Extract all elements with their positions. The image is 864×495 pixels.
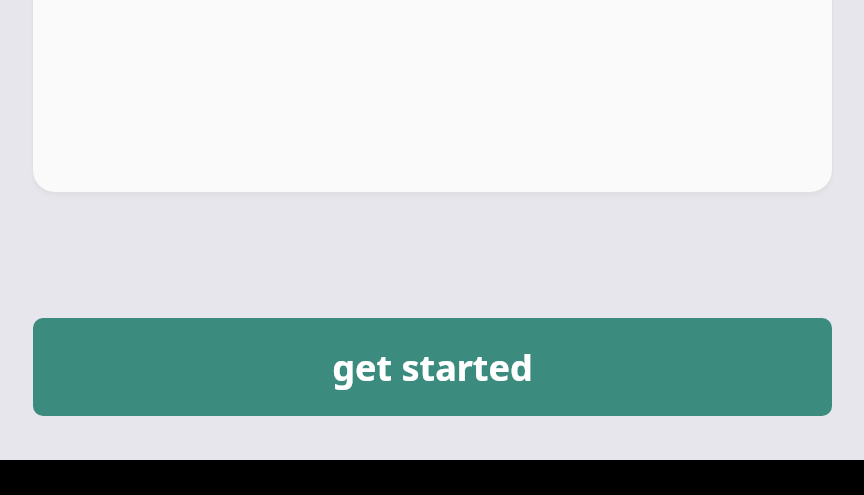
button[interactable]: get started <box>33 318 832 416</box>
staticText: get started <box>332 343 533 392</box>
